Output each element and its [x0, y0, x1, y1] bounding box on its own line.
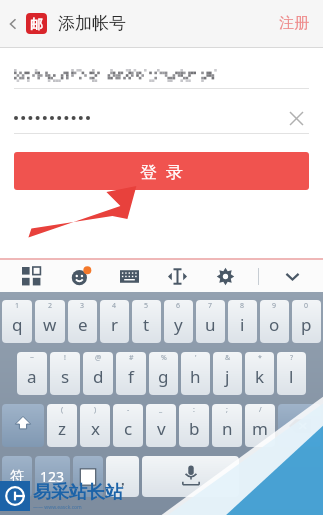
button[interactable]: /	[245, 404, 275, 447]
staticText: %	[161, 353, 167, 363]
button[interactable]: Settings	[210, 261, 240, 291]
staticText: h	[190, 365, 201, 388]
staticText: ~	[30, 353, 35, 363]
button[interactable]: ，	[106, 456, 139, 497]
button[interactable]: Input language	[73, 456, 103, 497]
staticText: k	[255, 365, 265, 388]
staticText: 添加帐号	[58, 13, 126, 34]
button[interactable]: ;	[212, 404, 242, 447]
button[interactable]: Clear password	[14, 103, 309, 134]
button[interactable]: Space and voice input	[142, 456, 239, 497]
staticText: n	[222, 417, 233, 440]
button[interactable]: '	[181, 352, 210, 395]
staticText: ;	[226, 405, 228, 415]
staticText: 5	[144, 301, 149, 311]
button[interactable]: -	[113, 404, 143, 447]
button[interactable]: 登 录	[14, 152, 309, 190]
button[interactable]: 3	[68, 300, 97, 343]
staticText: 9	[272, 301, 277, 311]
button[interactable]: ?	[277, 352, 306, 395]
staticText: :	[193, 405, 195, 415]
button[interactable]: Move cursor	[162, 261, 192, 291]
button[interactable]: 123	[35, 456, 70, 497]
button[interactable]: 1	[2, 300, 32, 343]
button[interactable]: 5	[132, 300, 161, 343]
staticText: !	[64, 353, 66, 363]
staticText: m	[252, 417, 268, 440]
button[interactable]: 4	[100, 300, 129, 343]
staticText: y	[174, 313, 183, 336]
button[interactable]: !	[50, 352, 80, 395]
button[interactable]: Shift	[2, 404, 44, 447]
button[interactable]: Clear password	[283, 105, 309, 131]
button[interactable]: _	[146, 404, 176, 447]
staticText: b	[189, 417, 200, 440]
staticText: 符	[10, 468, 24, 486]
staticText: '	[195, 353, 197, 363]
staticText: f	[128, 365, 134, 388]
staticText: u	[205, 313, 216, 336]
staticText: j	[225, 365, 230, 388]
staticText: q	[12, 313, 23, 336]
staticText: z	[58, 417, 66, 440]
staticText: *	[258, 353, 262, 363]
staticText: a	[27, 365, 37, 388]
staticText: g	[158, 365, 169, 388]
staticText: c	[124, 417, 133, 440]
staticText: /	[259, 405, 262, 415]
button[interactable]: 2	[35, 300, 65, 343]
staticText: 登 录	[140, 160, 183, 183]
staticText: l	[289, 365, 294, 388]
button[interactable]: (	[47, 404, 77, 447]
staticText: e	[78, 313, 88, 336]
staticText: 易采站长站	[33, 481, 123, 504]
button[interactable]: 注册	[265, 4, 323, 43]
button[interactable]: Hide keyboard	[277, 261, 307, 291]
staticText: )	[94, 405, 97, 415]
staticText: s	[61, 365, 70, 388]
staticText: 123	[40, 467, 65, 486]
staticText: 2	[48, 301, 53, 311]
staticText: -	[127, 405, 130, 415]
staticText: v	[157, 417, 166, 440]
button[interactable]: 9	[260, 300, 289, 343]
staticText: 8	[240, 301, 245, 311]
staticText: —— www.easck.com	[33, 504, 321, 511]
staticText: 1	[15, 301, 20, 311]
button[interactable]: ~	[17, 352, 47, 395]
button[interactable]: Keyboard layout	[114, 261, 144, 291]
button[interactable]: Back	[0, 0, 26, 47]
staticText: 4	[112, 301, 117, 311]
button[interactable]: Backspace	[278, 404, 321, 447]
staticText: #	[129, 353, 134, 363]
staticText: i	[240, 313, 245, 336]
button[interactable]: @	[83, 352, 113, 395]
staticText: (	[61, 405, 64, 415]
button[interactable]: 7	[196, 300, 225, 343]
button[interactable]: 8	[228, 300, 257, 343]
staticText: w	[43, 313, 57, 336]
staticText: 邮	[30, 16, 43, 32]
button[interactable]: &	[213, 352, 242, 395]
button[interactable]: 符	[2, 456, 32, 497]
staticText: @	[95, 353, 102, 363]
button[interactable]: 0	[292, 300, 321, 343]
staticText: t	[143, 313, 150, 336]
staticText: d	[93, 365, 104, 388]
staticText: x	[91, 417, 100, 440]
staticText: 3	[80, 301, 85, 311]
staticText: ?	[290, 353, 294, 363]
staticText: o	[269, 313, 280, 336]
staticText: ，	[114, 469, 131, 490]
button[interactable]: %	[149, 352, 178, 395]
staticText: 7	[208, 301, 213, 311]
button[interactable]: Emoji	[65, 261, 95, 291]
staticText: 0	[304, 301, 309, 311]
button[interactable]: Apps	[16, 261, 46, 291]
button[interactable]: :	[179, 404, 209, 447]
button[interactable]: #	[116, 352, 146, 395]
button[interactable]: )	[80, 404, 110, 447]
button[interactable]: 6	[164, 300, 193, 343]
button[interactable]: *	[245, 352, 274, 395]
staticText: 6	[176, 301, 181, 311]
